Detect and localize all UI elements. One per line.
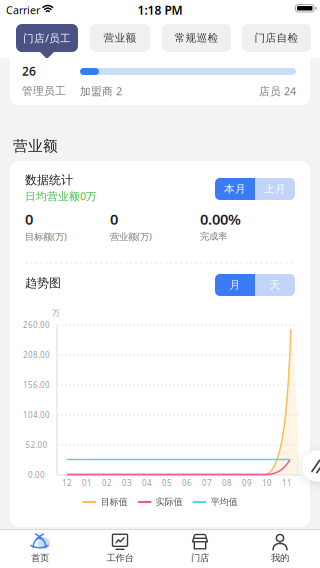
button[interactable]: 门店/员工 (16, 24, 78, 52)
staticText: 01 (82, 478, 92, 488)
staticText: 0 (110, 209, 118, 229)
staticText: 趋势图 (25, 276, 61, 290)
staticText: 门店自检 (254, 31, 298, 44)
button[interactable]: 工作台 (80, 531, 160, 566)
staticText: 数据统计 (25, 173, 73, 187)
staticText: 加盟商 2 (80, 84, 122, 98)
staticText: 26 (22, 63, 36, 79)
staticText: 09 (242, 478, 252, 488)
staticText: 0.00 (28, 470, 45, 480)
staticText: 目标额(万) (25, 230, 67, 243)
staticText: 实际值 (155, 496, 182, 508)
button[interactable]: 本月 (215, 178, 255, 200)
staticText: 工作台 (106, 552, 133, 564)
staticText: 0 (25, 209, 33, 229)
staticText: 1:18 PM (137, 2, 182, 18)
staticText: 营业额 (103, 31, 136, 44)
button[interactable]: 首页 (0, 531, 80, 566)
staticText: 天 (269, 278, 280, 291)
staticText: 06 (182, 478, 192, 488)
button[interactable]: 门店自检 (242, 24, 311, 52)
staticText: 完成率 (200, 231, 227, 242)
button[interactable]: 月 (215, 274, 255, 296)
staticText: 12 (62, 478, 72, 488)
staticText: 日均营业额0万 (25, 189, 97, 203)
button[interactable]: 我的 (240, 531, 320, 566)
button[interactable]: 上月 (255, 178, 295, 200)
staticText: 常规巡检 (174, 31, 218, 44)
staticText: 208.00 (23, 350, 50, 360)
button[interactable]: 门店 (160, 531, 240, 566)
staticText: 上月 (264, 182, 286, 195)
staticText: 管理员工 (22, 84, 66, 97)
staticText: 营业额 (13, 137, 58, 155)
staticText: 05 (162, 478, 172, 488)
staticText: 11 (282, 478, 292, 488)
staticText: 02 (102, 478, 112, 488)
staticText: 03 (122, 478, 132, 488)
staticText: 0.00% (200, 209, 241, 229)
staticText: 月 (229, 278, 240, 291)
staticText: 门店 (191, 552, 209, 564)
staticText: 本月 (224, 182, 246, 195)
staticText: 我的 (271, 552, 289, 564)
staticText: 店员 24 (259, 84, 296, 98)
button[interactable]: 营业额 (90, 24, 150, 52)
staticText: 门店/员工 (23, 31, 71, 45)
staticText: 08 (222, 478, 232, 488)
staticText: 目标值 (100, 496, 127, 508)
staticText: 07 (202, 478, 212, 488)
button[interactable]: 天 (255, 274, 295, 296)
staticText: 营业额(万) (110, 230, 152, 243)
staticText: 10 (262, 478, 272, 488)
button[interactable]: 快捷操作 (302, 450, 320, 482)
staticText: 04 (142, 478, 152, 488)
staticText: 万 (52, 308, 60, 318)
staticText: 首页 (31, 552, 49, 564)
staticText: 52.00 (25, 440, 47, 450)
button[interactable]: 常规巡检 (162, 24, 231, 52)
staticText: 104.00 (23, 410, 50, 420)
staticText: 平均值 (210, 496, 237, 508)
staticText: Carrier (6, 3, 40, 17)
staticText: 156.00 (23, 380, 50, 390)
staticText: 260.00 (23, 320, 50, 330)
